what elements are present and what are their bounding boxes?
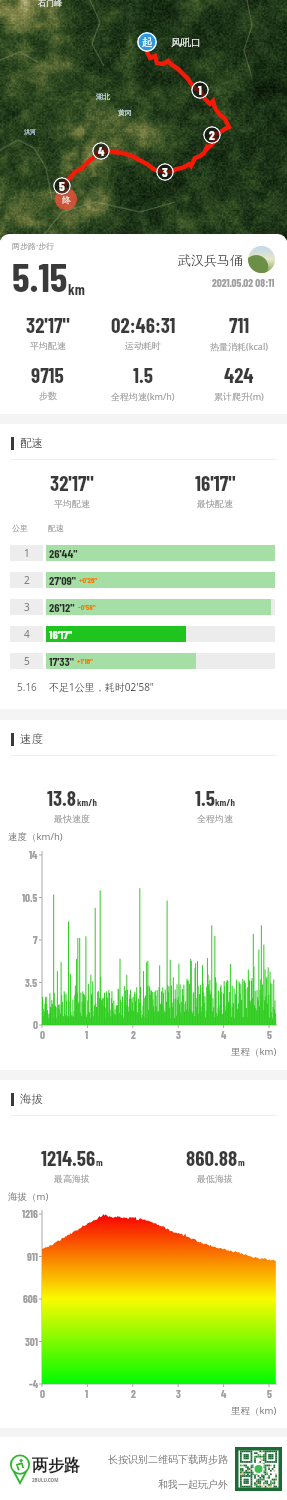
- staticText: 16'17": [49, 627, 73, 641]
- staticText: 5: [59, 178, 65, 194]
- staticText: 606: [23, 1292, 38, 1305]
- staticText: 最高海拔: [54, 1173, 90, 1184]
- staticText: 海拔: [20, 1092, 43, 1106]
- staticText: 4: [98, 143, 105, 159]
- staticText: 1: [198, 82, 202, 98]
- staticText: 10.5: [22, 891, 38, 904]
- staticText: +1'16": [77, 656, 93, 666]
- staticText: m: [238, 1156, 245, 1168]
- staticText: 02:46:31: [111, 312, 176, 337]
- staticText: 1.5: [133, 362, 153, 387]
- staticText: 武汉兵马俑: [178, 252, 243, 268]
- staticText: 运动耗时: [125, 340, 161, 351]
- staticText: 424: [224, 362, 254, 387]
- staticText: 公里: [12, 523, 28, 533]
- staticText: km: [68, 280, 85, 298]
- staticText: 4: [24, 627, 30, 641]
- staticText: 起: [142, 35, 153, 49]
- staticText: 860.88: [186, 1145, 238, 1170]
- staticText: 26'44": [49, 546, 78, 560]
- staticText: 32'17": [50, 470, 94, 495]
- staticText: 3.5: [25, 976, 38, 989]
- staticText: 最低海拔: [197, 1173, 233, 1184]
- staticText: 7: [33, 933, 38, 946]
- staticText: -4: [29, 1377, 38, 1390]
- staticText: 黄冈: [118, 108, 132, 117]
- staticText: 14: [29, 848, 38, 861]
- staticText: +0'26": [79, 575, 98, 585]
- staticText: 13.8: [47, 785, 77, 810]
- staticText: 石门峰: [38, 0, 62, 8]
- staticText: 平均配速: [30, 340, 66, 351]
- staticText: 海拔（m): [8, 1190, 49, 1203]
- staticText: 和我一起玩户外: [158, 1478, 228, 1491]
- staticText: 1: [85, 1028, 89, 1041]
- staticText: 2021.05.02 08:11: [212, 276, 275, 289]
- staticText: 平均配速: [54, 498, 90, 509]
- staticText: 27'09": [49, 573, 76, 587]
- staticText: 2: [131, 1387, 136, 1400]
- staticText: 全程均速: [197, 813, 233, 824]
- staticText: -0'58": [78, 602, 96, 612]
- staticText: 2: [131, 1028, 136, 1041]
- staticText: 5: [267, 1028, 272, 1041]
- staticText: 0: [33, 1018, 38, 1031]
- staticText: 4: [221, 1028, 227, 1041]
- staticText: 5: [24, 654, 30, 668]
- staticText: 5.15: [12, 252, 68, 300]
- staticText: 711: [229, 312, 250, 337]
- staticText: 17'33": [49, 654, 74, 668]
- staticText: 速度（km/h): [8, 830, 63, 843]
- staticText: m: [96, 1156, 103, 1168]
- staticText: 5: [267, 1387, 272, 1400]
- staticText: 累计爬升(m): [214, 390, 264, 402]
- button[interactable]: 两步路: [0, 1437, 287, 1500]
- staticText: 1: [24, 546, 30, 560]
- staticText: 热量消耗(kcal): [210, 340, 268, 352]
- staticText: 0: [40, 1387, 45, 1400]
- staticText: 风吼口: [171, 36, 201, 49]
- staticText: 湖北: [96, 92, 110, 101]
- staticText: 1.5: [195, 785, 215, 810]
- staticText: 配速: [48, 523, 64, 533]
- staticText: 0: [40, 1028, 45, 1041]
- staticText: 301: [25, 1335, 38, 1348]
- staticText: 9715: [31, 362, 64, 387]
- staticText: 两步路: [32, 1456, 80, 1476]
- staticText: 1: [85, 1387, 89, 1400]
- staticText: 2BULU.COM: [32, 1477, 59, 1483]
- staticText: 2: [24, 573, 30, 587]
- staticText: 全程均速(km/h): [111, 390, 175, 402]
- staticText: 911: [27, 1250, 38, 1263]
- staticText: 3: [176, 1387, 181, 1400]
- staticText: 16'17": [195, 470, 236, 495]
- staticText: 4: [221, 1387, 227, 1400]
- staticText: 里程（km): [231, 1045, 277, 1058]
- staticText: 3: [162, 164, 168, 180]
- staticText: 32'17": [26, 312, 70, 337]
- staticText: 长按识别二维码下载两步路: [108, 1453, 228, 1466]
- staticText: 最快速度: [54, 813, 90, 824]
- staticText: km/h: [77, 796, 97, 808]
- staticText: 两步路·步行: [12, 240, 55, 251]
- staticText: 里程（km): [231, 1404, 277, 1417]
- staticText: 步数: [39, 390, 57, 401]
- staticText: 1214.56: [41, 1145, 96, 1170]
- staticText: 速度: [20, 732, 43, 746]
- staticText: 终: [62, 194, 71, 205]
- staticText: 洪河: [24, 128, 36, 136]
- staticText: 3: [176, 1028, 181, 1041]
- staticText: 不足1公里，耗时02'58": [49, 680, 154, 694]
- staticText: 1216: [22, 1207, 38, 1220]
- staticText: 26'12": [49, 600, 75, 614]
- staticText: 5.16: [17, 680, 37, 694]
- staticText: 配速: [20, 436, 43, 450]
- staticText: 2: [209, 127, 215, 143]
- staticText: 3: [24, 600, 30, 614]
- staticText: 最快配速: [197, 498, 233, 509]
- staticText: km/h: [215, 796, 235, 808]
